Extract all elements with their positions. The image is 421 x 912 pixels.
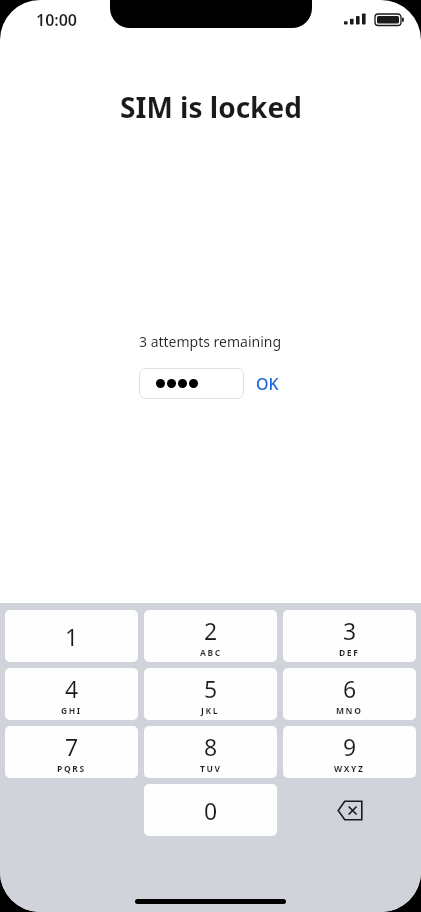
staticText: 4 [65,673,79,704]
staticText: 9 [343,731,357,762]
staticText: WXYZ [334,763,365,775]
staticText: 7 [65,731,79,762]
button[interactable]: 0 [144,784,277,836]
staticText: 5 [204,673,218,704]
staticText: MNO [336,705,363,717]
staticText: DEF [339,647,360,659]
staticText: 0 [204,795,218,826]
staticText: SIM is locked [120,88,302,126]
button[interactable]: 5 [144,668,277,720]
staticText: OK [256,373,279,395]
button[interactable]: 9 [283,726,416,778]
staticText: 8 [204,731,218,762]
staticText: 1 [65,621,79,652]
button[interactable]: Backspace [283,784,416,836]
staticText: 3 [343,615,357,646]
button[interactable]: 3 [283,610,416,662]
button[interactable]: 2 [144,610,277,662]
button[interactable]: 6 [283,668,416,720]
staticText: TUV [200,763,222,775]
staticText: PQRS [57,763,86,775]
staticText: 3 attempts remaining [139,332,282,351]
staticText: JKL [201,705,220,717]
staticText: GHI [61,705,82,717]
button[interactable]: 8 [144,726,277,778]
button[interactable] [139,368,244,399]
staticText: 10:00 [36,9,78,31]
staticText: 2 [204,615,218,646]
button[interactable]: 4 [5,668,138,720]
staticText: 6 [343,673,357,704]
button[interactable]: 7 [5,726,138,778]
button[interactable]: OK [252,369,283,399]
staticText: ABC [200,647,222,659]
button[interactable]: 1 [5,610,138,662]
